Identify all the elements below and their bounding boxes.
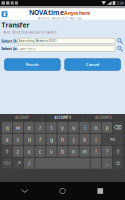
staticText: ? — [106, 148, 108, 155]
button[interactable]: c — [35, 146, 45, 157]
staticText: s — [17, 136, 20, 143]
button[interactable]: Back — [12, 182, 38, 200]
button[interactable]: ⌫ — [113, 122, 123, 133]
button[interactable]: ACCOUNT — [1, 115, 42, 121]
button[interactable]: h — [57, 134, 68, 145]
button[interactable]: p — [102, 122, 112, 133]
button[interactable]: w — [13, 122, 23, 133]
button[interactable]: Search Select Dept — [115, 38, 125, 44]
staticText: l — [95, 136, 96, 143]
button[interactable]: ACCOUNT IS — [83, 115, 124, 121]
staticText: time — [48, 8, 64, 17]
button[interactable]: k — [80, 134, 90, 145]
button[interactable]: z — [13, 146, 23, 157]
staticText: m — [82, 148, 87, 155]
staticText: f — [39, 136, 41, 143]
staticText: Cancel — [86, 62, 99, 67]
button[interactable]: ! — [91, 146, 101, 157]
staticText: v — [50, 148, 53, 155]
button[interactable]: v — [46, 146, 56, 157]
button[interactable]: q — [2, 122, 12, 133]
button[interactable]: e — [24, 122, 34, 133]
staticText: Next — [110, 138, 115, 141]
staticText: ACCOUNT — [15, 116, 28, 119]
staticText: Select Dept — [1, 38, 23, 43]
staticText: i — [84, 124, 85, 131]
button[interactable]: g — [46, 134, 56, 145]
staticText: e — [28, 124, 31, 131]
staticText: . — [95, 160, 96, 167]
staticText: k — [83, 136, 86, 143]
button[interactable]: Cancel — [65, 59, 120, 70]
button[interactable]: ☺ — [113, 158, 123, 169]
staticText: ⇧ — [116, 148, 120, 154]
staticText: p — [105, 124, 108, 131]
staticText: g — [50, 136, 53, 143]
staticText: ACCOUNT IS — [95, 116, 111, 119]
staticText: ?123 — [3, 162, 10, 165]
button[interactable]: ACCOUNT'S — [42, 115, 83, 121]
button[interactable]: a — [2, 134, 12, 145]
staticText: y — [61, 124, 64, 131]
button[interactable]: / — [24, 158, 34, 169]
staticText: Accounting Members (000) — [19, 39, 57, 43]
button[interactable]: ⇧ — [113, 146, 123, 157]
staticText: 3:34 — [116, 0, 123, 6]
button[interactable]: j — [68, 134, 79, 145]
staticText: z — [17, 148, 20, 155]
staticText: Punch — [26, 62, 39, 67]
button[interactable]: d — [24, 134, 34, 145]
staticText: ⇧ — [5, 148, 9, 154]
button[interactable]: ⇧ — [2, 146, 12, 157]
button[interactable]: u — [68, 122, 79, 133]
staticText: ☺ — [116, 161, 120, 166]
button[interactable]: i — [80, 122, 90, 133]
staticText: CLERK (009) — [19, 47, 36, 50]
button[interactable]: Next — [102, 134, 123, 145]
button[interactable]: b — [57, 146, 68, 157]
button[interactable]: m — [80, 146, 90, 157]
button[interactable]: ?123 — [2, 158, 12, 169]
staticText: c — [39, 148, 42, 155]
staticText: / — [28, 160, 30, 167]
button[interactable]: Home — [49, 182, 75, 200]
staticText: u — [72, 124, 75, 131]
button[interactable]: x — [24, 146, 34, 157]
staticText: ⌫ — [114, 124, 122, 130]
staticText: x — [28, 148, 31, 155]
button[interactable]: Home — [0, 11, 7, 17]
staticText: Workforce Management Made Easy — [37, 17, 81, 20]
staticText: d — [28, 136, 31, 143]
staticText: n — [72, 148, 75, 155]
staticText: b — [61, 148, 64, 155]
button[interactable]: o — [91, 122, 101, 133]
button[interactable]: , — [102, 158, 112, 169]
button[interactable]: l — [91, 134, 101, 145]
staticText: (Note: Select Dept and Job to transfer) — [2, 31, 56, 34]
staticText: Anywhere — [64, 9, 90, 16]
staticText: h — [61, 136, 64, 143]
button[interactable]: ? — [102, 146, 112, 157]
button[interactable]: Recents — [87, 182, 113, 200]
button[interactable]: 🎤 — [13, 158, 23, 169]
staticText: , — [106, 160, 107, 167]
staticText: o — [94, 124, 97, 131]
staticText: ACCOUNT'S — [54, 116, 70, 119]
button[interactable]: r — [35, 122, 45, 133]
button[interactable]: n — [68, 146, 79, 157]
staticText: Select Job — [1, 46, 20, 51]
staticText: a — [5, 136, 8, 143]
button[interactable]: . — [91, 158, 101, 169]
button[interactable]: y — [57, 122, 68, 133]
staticText: 🎤 — [16, 161, 21, 166]
staticText: w — [16, 124, 20, 131]
staticText: Transfer — [1, 20, 29, 29]
button[interactable]: f — [35, 134, 45, 145]
staticText: NOVA — [29, 8, 48, 17]
button[interactable]: s — [13, 134, 23, 145]
button[interactable]: Search Select Job — [115, 45, 125, 52]
button[interactable]: t — [46, 122, 56, 133]
button[interactable]: Punch — [5, 59, 60, 70]
